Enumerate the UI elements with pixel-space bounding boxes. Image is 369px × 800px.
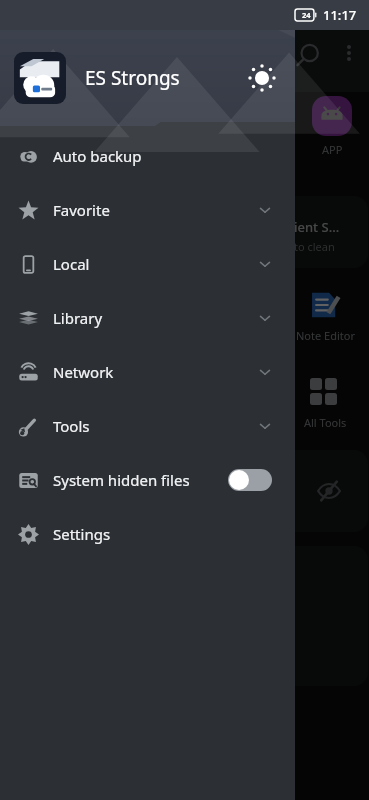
staticText: to clean — [294, 239, 335, 254]
staticText: Note Editor — [296, 328, 355, 343]
button[interactable]: Note Editor — [289, 288, 361, 343]
staticText: 24 — [302, 10, 311, 20]
button[interactable]: Auto backup — [0, 129, 295, 183]
staticText: Network — [53, 362, 114, 382]
button[interactable]: Network — [0, 345, 295, 399]
button[interactable] — [14, 52, 66, 104]
staticText: Tools — [53, 416, 90, 436]
button[interactable]: APP — [296, 96, 368, 157]
button[interactable]: More options — [334, 38, 364, 68]
button[interactable]: Favorite — [0, 183, 295, 237]
button[interactable]: Local — [0, 237, 295, 291]
button[interactable]: ient S… — [258, 196, 368, 268]
button[interactable]: Settings — [0, 507, 295, 561]
staticText: Settings — [53, 524, 111, 544]
button[interactable]: Toggle theme — [243, 59, 281, 97]
staticText: APP — [322, 142, 343, 157]
button[interactable]: Library — [0, 291, 295, 345]
staticText: Library — [53, 308, 103, 328]
staticText: Favorite — [53, 200, 110, 220]
staticText: ES Strongs — [85, 65, 180, 91]
button[interactable] — [258, 450, 368, 532]
staticText: ient S… — [294, 218, 340, 236]
staticText: System hidden files — [53, 470, 190, 490]
staticText: All Tools — [304, 415, 347, 430]
button[interactable]: System hidden files — [0, 453, 295, 507]
staticText: Local — [53, 254, 90, 274]
button[interactable]: Tools — [0, 399, 295, 453]
staticText: Auto backup — [53, 146, 142, 166]
button[interactable]: Search — [292, 38, 326, 72]
staticText: 11:17 — [323, 6, 357, 24]
button[interactable]: All Tools — [289, 378, 361, 430]
